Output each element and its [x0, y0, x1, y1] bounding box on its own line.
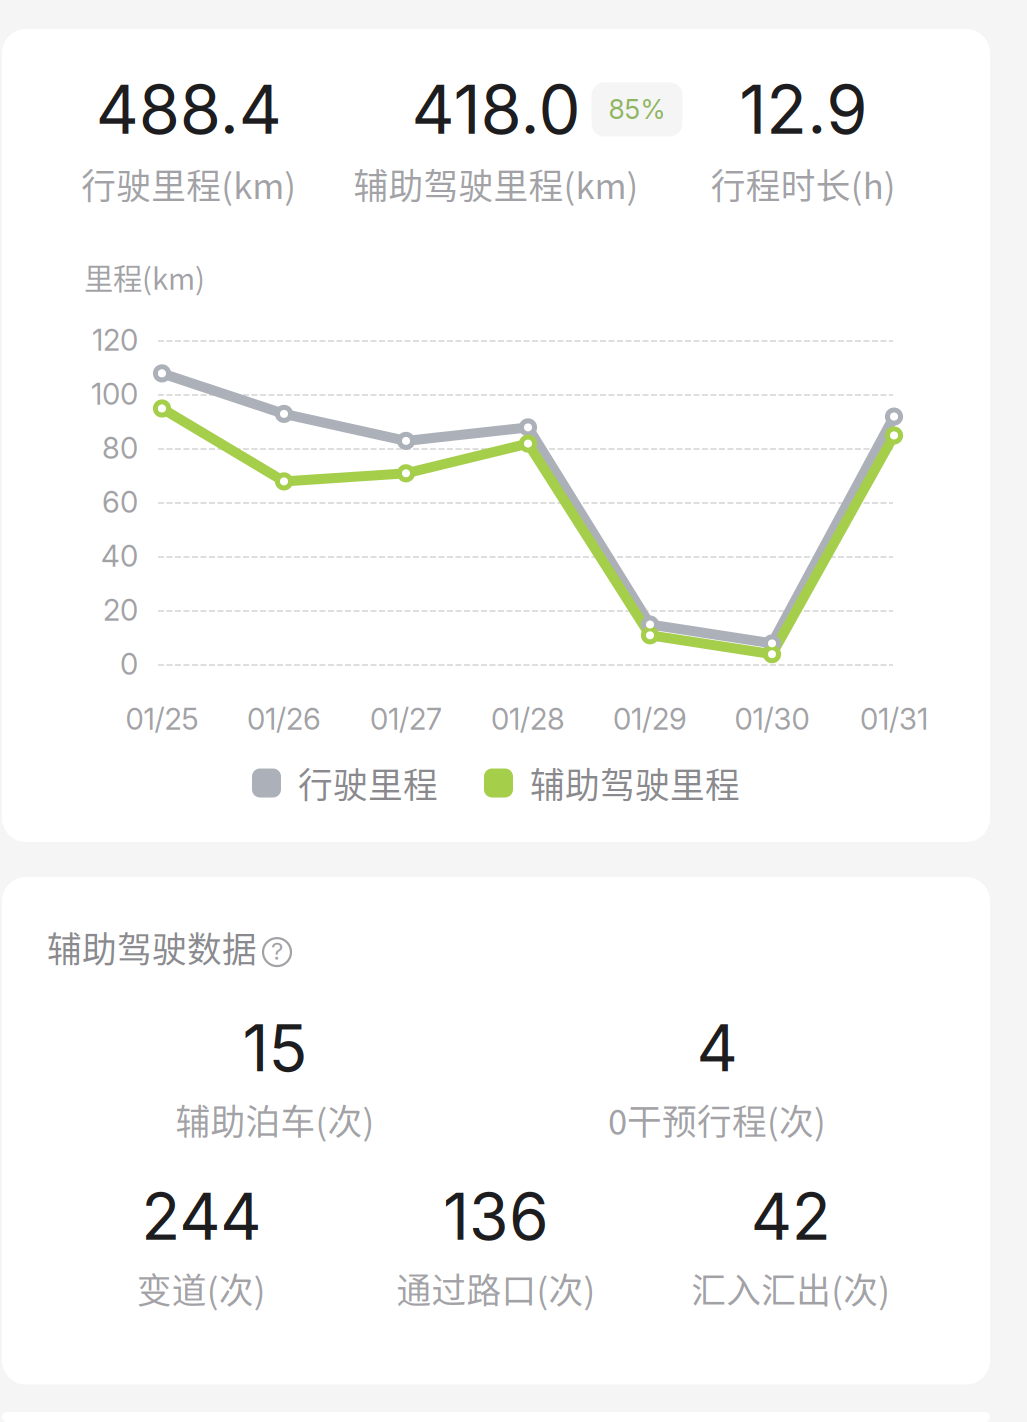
staticText: 100 [91, 376, 138, 412]
staticText: 488.4 [96, 69, 282, 150]
staticText: 4 [696, 1009, 737, 1087]
staticText: 20 [103, 592, 138, 628]
staticText: 汇入汇出(次) [691, 1263, 890, 1313]
staticText: 85% [608, 93, 665, 126]
staticText: 行程时长(h) [711, 159, 896, 209]
button[interactable]: 行驶里程 [252, 758, 438, 808]
staticText: 136 [443, 1178, 549, 1255]
staticText: 15 [242, 1009, 307, 1087]
staticText: 变道(次) [137, 1263, 266, 1313]
staticText: 辅助驾驶里程(km) [353, 159, 638, 209]
staticText: 40 [101, 538, 138, 574]
staticText: 01/30 [734, 701, 809, 737]
staticText: 辅助驾驶里程 [530, 758, 740, 808]
button[interactable]: 关于辅助驾驶数据 [262, 932, 292, 962]
staticText: 01/25 [125, 701, 198, 737]
staticText: 0 [120, 646, 138, 682]
staticText: 辅助泊车(次) [175, 1095, 374, 1145]
staticText: 244 [141, 1178, 261, 1255]
staticText: 里程(km) [84, 256, 205, 298]
staticText: 01/29 [613, 701, 687, 737]
staticText: 01/26 [247, 701, 321, 737]
staticText: 行驶里程 [298, 758, 438, 808]
staticText: 辅助驾驶数据 [47, 922, 257, 972]
staticText: 120 [92, 322, 138, 358]
staticText: 行驶里程(km) [81, 159, 296, 209]
staticText: 通过路口(次) [396, 1263, 595, 1313]
staticText: 01/31 [860, 701, 928, 737]
staticText: 01/27 [370, 701, 442, 737]
staticText: 01/28 [491, 701, 565, 737]
staticText: 80 [102, 430, 138, 466]
staticText: 60 [102, 484, 138, 520]
staticText: ? [271, 937, 283, 966]
staticText: 12.9 [739, 69, 867, 150]
staticText: 418.0 [411, 69, 580, 150]
staticText: 42 [751, 1178, 831, 1255]
button[interactable]: 辅助驾驶里程 [484, 758, 740, 808]
staticText: 0干预行程(次) [608, 1095, 826, 1145]
